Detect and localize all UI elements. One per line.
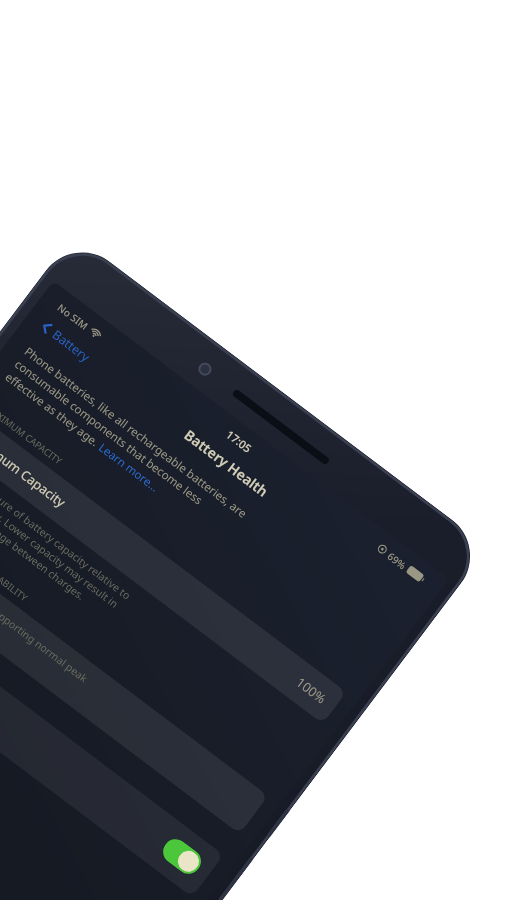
staticText: when it was new. Lower capacity may resu… — [0, 463, 122, 611]
staticText: consumable components that become less — [11, 356, 206, 509]
button[interactable]: Learn more… — [95, 440, 162, 496]
staticText: fewer hours of usage between charges. — [0, 475, 88, 603]
staticText: No SIM — [55, 300, 91, 333]
staticText: PEAK PERFORMANCE CAPABILITY — [0, 505, 30, 604]
button[interactable]: Battery — [32, 312, 99, 371]
staticText: 100% — [292, 673, 330, 708]
staticText: Battery — [49, 326, 93, 366]
staticText: effective as they age. — [2, 369, 105, 452]
staticText: Your battery is currently supporting nor… — [0, 529, 91, 685]
staticText: 17:05 — [223, 427, 255, 456]
button[interactable]: Optimised Battery Charging — [0, 573, 224, 897]
staticText: Battery Health — [181, 425, 272, 501]
staticText: MAXIMUM CAPACITY — [0, 401, 65, 468]
button[interactable]: Maximum Capacity — [0, 410, 347, 724]
button[interactable]: Optimised Battery Charging toggle — [158, 834, 206, 879]
button[interactable]: Your battery is currently supporting nor… — [0, 514, 268, 834]
staticText: This is a measure of battery capacity re… — [0, 452, 133, 602]
staticText: Maximum Capacity — [0, 426, 69, 511]
staticText: Phone batteries, like all rechargeable b… — [21, 344, 250, 522]
staticText: 69% — [385, 549, 409, 572]
